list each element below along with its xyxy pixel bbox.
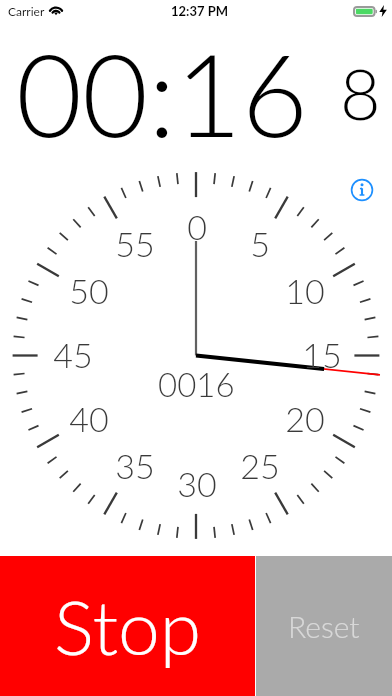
staticText: 00:16 [16, 24, 308, 154]
staticText: 35 [115, 445, 155, 486]
staticText: 12:37 PM [171, 3, 228, 19]
staticText: 0016 [158, 364, 235, 400]
staticText: 10 [285, 270, 325, 311]
staticText: 8 [340, 51, 381, 135]
staticText: 25 [240, 445, 280, 486]
button[interactable]: Reset [256, 556, 392, 696]
staticText: 40 [69, 398, 109, 439]
staticText: 0 [187, 206, 207, 247]
button[interactable]: Info [348, 176, 376, 204]
staticText: 20 [285, 398, 325, 439]
staticText: Reset [288, 608, 360, 644]
staticText: 45 [53, 334, 93, 375]
staticText: Carrier [8, 4, 45, 18]
staticText: 15 [302, 334, 342, 375]
staticText: 30 [177, 463, 217, 504]
staticText: 50 [69, 270, 109, 311]
staticText: Stop [54, 581, 202, 671]
staticText: 5 [250, 223, 270, 264]
button[interactable]: Stop [0, 556, 255, 696]
staticText: 55 [115, 223, 155, 264]
